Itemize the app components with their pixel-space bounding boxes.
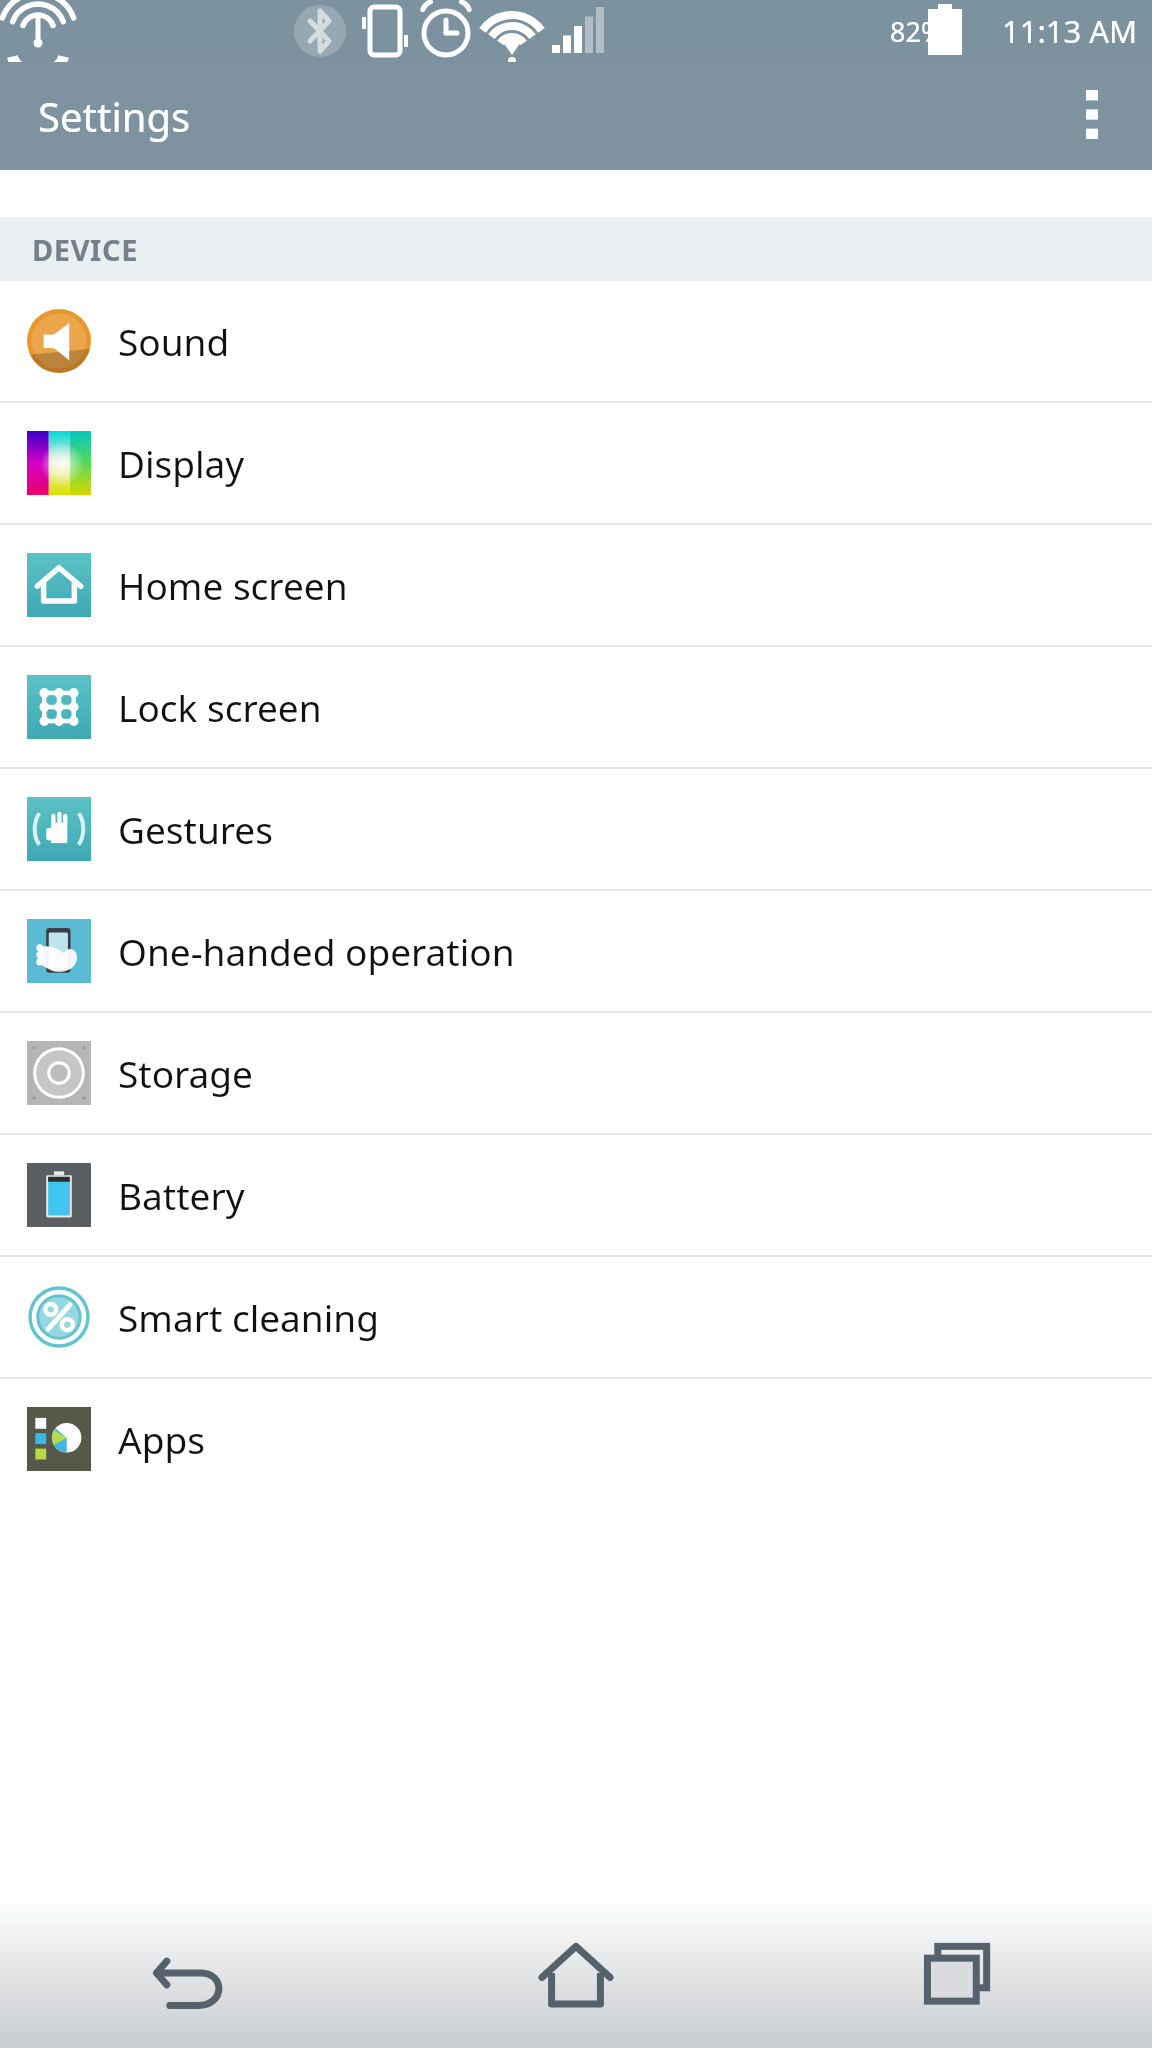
staticText: Display [118,438,245,488]
staticText: Lock screen [118,682,322,732]
staticText: Home screen [118,560,348,610]
staticText: DEVICE [32,230,139,269]
button[interactable]: Sound [0,281,1152,401]
staticText: Apps [118,1414,205,1464]
staticText: Sound [118,316,230,366]
button[interactable]: Display [0,403,1152,523]
button[interactable]: Back [0,1898,384,2048]
button[interactable]: Home [384,1898,768,2048]
staticText: Smart cleaning [118,1292,379,1342]
button[interactable]: Storage [0,1013,1152,1133]
button[interactable]: Smart cleaning [0,1257,1152,1377]
button[interactable]: Lock screen [0,647,1152,767]
button[interactable]: One-handed operation [0,891,1152,1011]
staticText: Settings [38,89,191,143]
button[interactable]: More options [1054,78,1130,154]
button[interactable]: Battery [0,1135,1152,1255]
staticText: 11:13 AM [1002,10,1138,52]
button[interactable]: Home screen [0,525,1152,645]
staticText: One-handed operation [118,926,515,976]
button[interactable]: Apps [0,1379,1152,1499]
button[interactable]: Gestures [0,769,1152,889]
button[interactable]: Recent apps [768,1898,1152,2048]
staticText: Storage [118,1048,253,1098]
staticText: Battery [118,1170,245,1220]
staticText: 82% [890,13,944,50]
staticText: Gestures [118,804,273,854]
